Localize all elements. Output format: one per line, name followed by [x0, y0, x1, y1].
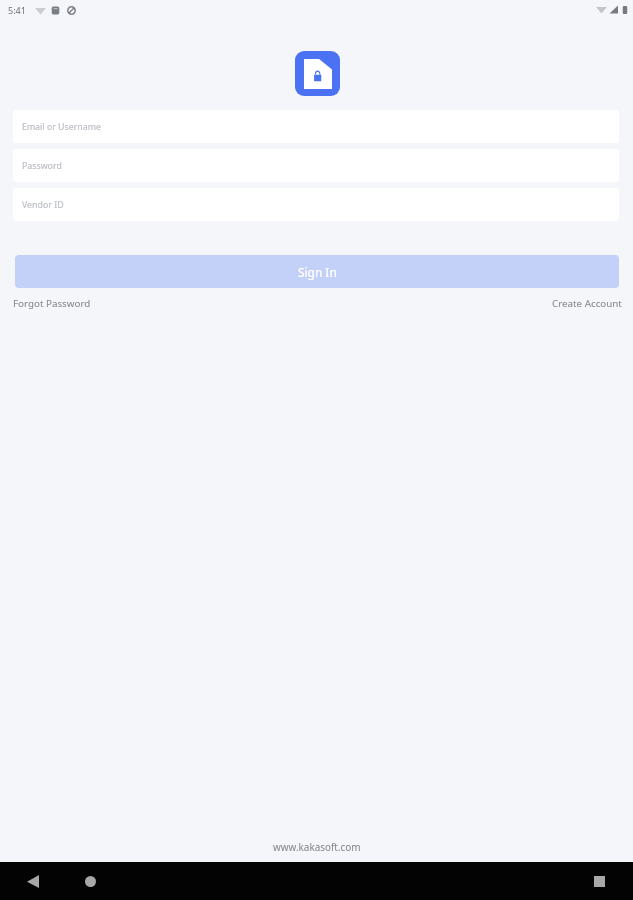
button[interactable]: www.kakasoft.com [269, 838, 365, 855]
button[interactable]: Sign In [15, 255, 619, 288]
staticText: Sign In [298, 264, 337, 280]
staticText: Forgot Password [13, 297, 91, 310]
staticText: Vendor ID [22, 199, 64, 211]
staticText: Email or Username [22, 121, 101, 133]
button[interactable]: Email or Username [13, 110, 619, 143]
button[interactable]: Recents [586, 868, 612, 894]
staticText: 5:41 [8, 4, 26, 16]
button[interactable]: Back [20, 868, 46, 894]
staticText: Create Account [552, 297, 622, 310]
staticText: www.kakasoft.com [273, 840, 361, 853]
button[interactable]: Create Account [552, 294, 622, 313]
staticText: Password [22, 160, 62, 172]
button[interactable]: Vendor ID [13, 188, 619, 221]
button[interactable]: Forgot Password [13, 294, 91, 313]
button[interactable]: Password [13, 149, 619, 182]
button[interactable]: Home [77, 868, 103, 894]
